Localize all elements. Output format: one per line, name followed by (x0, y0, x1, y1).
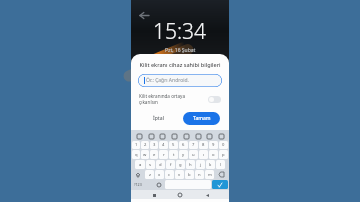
staticText: c (168, 172, 171, 178)
button[interactable]: 9 (209, 141, 218, 149)
button[interactable]: Ör.: Çağrı Android. (138, 74, 222, 87)
staticText: f (170, 162, 172, 168)
button[interactable]: Keyboard tool 1 (147, 132, 155, 140)
staticText: e (153, 152, 156, 158)
staticText: 2 (144, 142, 147, 148)
staticText: v (178, 172, 181, 178)
button[interactable]: v (175, 170, 184, 179)
button[interactable]: z (145, 170, 154, 179)
staticText: 8 (202, 142, 205, 148)
button[interactable]: Keyboard tool 7 (217, 132, 225, 140)
staticText: 4 (162, 142, 165, 148)
button[interactable]: Tamam (183, 112, 220, 125)
button[interactable]: h (186, 160, 195, 169)
staticText: w (143, 152, 147, 158)
button[interactable]: f (166, 160, 175, 169)
staticText: 9 (212, 142, 215, 148)
button[interactable]: k (206, 160, 215, 169)
staticText: Kilit ekranında ortaya çıkarılsın (139, 93, 204, 105)
staticText: s (149, 162, 152, 168)
button[interactable]: Keyboard tool 4 (182, 132, 190, 140)
button[interactable]: c (165, 170, 174, 179)
staticText: r (163, 152, 165, 158)
button[interactable]: 8 (199, 141, 208, 149)
staticText: p (222, 152, 225, 158)
button[interactable]: p (219, 150, 228, 159)
button[interactable]: t (169, 150, 178, 159)
staticText: 1 (135, 142, 138, 148)
staticText: k (209, 162, 212, 168)
staticText: Kilit ekranı cihaz sahibi bilgileri (139, 61, 221, 68)
staticText: h (189, 162, 192, 168)
button[interactable]: d (156, 160, 165, 169)
button[interactable]: 7 (189, 141, 198, 149)
button[interactable]: n (195, 170, 204, 179)
button[interactable]: w (141, 150, 149, 159)
button[interactable]: q (132, 150, 140, 159)
staticText: İptal (153, 115, 164, 122)
staticText: o (212, 152, 215, 158)
staticText: 0 (222, 142, 225, 148)
staticText: m (208, 172, 212, 178)
button[interactable]: ı (199, 150, 208, 159)
staticText: Pzt, 16 Şubat (165, 47, 196, 54)
button[interactable]: 0 (219, 141, 228, 149)
staticText: x (158, 172, 161, 178)
staticText: j (200, 162, 202, 168)
staticText: u (192, 152, 195, 158)
staticText: l (220, 162, 222, 168)
staticText: ı (203, 152, 205, 158)
button[interactable]: Keyboard tool 0 (135, 132, 143, 140)
staticText: 7 (192, 142, 195, 148)
button[interactable]: Keyboard tool 2 (158, 132, 166, 140)
button[interactable]: a (135, 160, 145, 169)
staticText: z (149, 172, 151, 178)
button[interactable]: g (176, 160, 185, 169)
button[interactable]: Keyboard tool 3 (170, 132, 178, 140)
button[interactable]: r (159, 150, 168, 159)
staticText: a (139, 162, 142, 168)
button[interactable]: Home (176, 191, 184, 199)
button[interactable]: b (185, 170, 194, 179)
button[interactable]: x (155, 170, 164, 179)
button[interactable]: ?123 (132, 180, 144, 189)
button[interactable]: o (209, 150, 218, 159)
staticText: b (188, 172, 191, 178)
staticText: ?123 (134, 182, 142, 187)
button[interactable]: Enter (212, 180, 228, 189)
button[interactable]: Back (203, 191, 211, 199)
button[interactable]: Language (154, 180, 164, 189)
button[interactable]: e (150, 150, 158, 159)
button[interactable]: m (205, 170, 214, 179)
button[interactable]: 3 (150, 141, 158, 149)
button[interactable]: j (196, 160, 205, 169)
staticText: 5 (172, 142, 175, 148)
button[interactable]: Shift (132, 170, 144, 179)
button[interactable]: s (146, 160, 155, 169)
button[interactable]: Recents (150, 191, 158, 199)
staticText: g (179, 162, 182, 168)
staticText: t (173, 152, 175, 158)
button[interactable]: u (189, 150, 198, 159)
staticText: q (135, 152, 138, 158)
button[interactable]: 2 (141, 141, 149, 149)
button[interactable]: Keyboard tool 5 (194, 132, 202, 140)
button[interactable]: 1 (132, 141, 140, 149)
button[interactable]: l (216, 160, 225, 169)
button[interactable]: Kilit ekranında ortaya çıkarılsın (139, 93, 221, 105)
button[interactable]: İptal (140, 112, 177, 125)
button[interactable]: y (179, 150, 188, 159)
staticText: d (159, 162, 162, 168)
staticText: 6 (182, 142, 185, 148)
staticText: Ör.: Çağrı Android. (146, 77, 189, 84)
staticText: Tamam (193, 115, 211, 122)
button[interactable]: Back (137, 8, 151, 22)
button[interactable]: 6 (179, 141, 188, 149)
button[interactable]: Keyboard tool 6 (205, 132, 213, 140)
button[interactable]: 4 (159, 141, 168, 149)
button[interactable]: Backspace (215, 170, 228, 179)
button[interactable]: 5 (169, 141, 178, 149)
staticText: 15:34 (153, 17, 207, 46)
